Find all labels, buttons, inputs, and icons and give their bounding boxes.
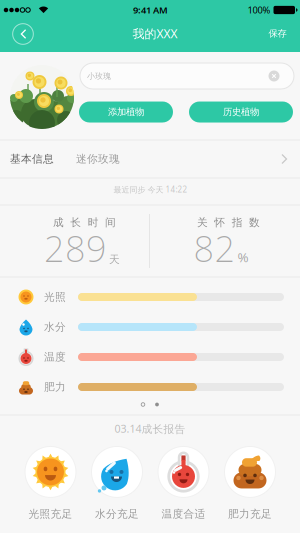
staticText: 水分 (44, 320, 66, 333)
staticText: 我的XXX (132, 25, 177, 41)
staticText: 82 (193, 224, 235, 272)
button[interactable]: 光照充足 (17, 442, 83, 524)
staticText: 最近同步 今天 14:22 (113, 184, 187, 195)
staticText: 关怀指数 (197, 216, 260, 229)
staticText: 迷你玫瑰 (76, 152, 120, 165)
button[interactable]: 添加植物 (79, 101, 173, 122)
staticText: 03.14成长报告 (114, 422, 185, 436)
staticText: 肥力充足 (228, 507, 272, 520)
staticText: 光照 (44, 290, 66, 303)
button[interactable]: 肥力充足 (217, 442, 283, 524)
staticText: 9:41 AM (133, 4, 168, 16)
button[interactable]: 温度合适 (150, 442, 216, 524)
staticText: 小玫瑰 (87, 71, 111, 81)
staticText: 100% (247, 4, 270, 16)
button[interactable]: 历史植物 (189, 101, 293, 122)
staticText: 基本信息 (10, 152, 54, 165)
staticText: 光照充足 (28, 507, 72, 520)
staticText: 添加植物 (108, 106, 144, 118)
staticText: 温度 (44, 350, 66, 363)
staticText: 历史植物 (223, 106, 259, 118)
button[interactable]: 保存 (268, 28, 286, 39)
button[interactable] (12, 23, 33, 44)
staticText: 成长时间 (53, 216, 116, 229)
staticText: % (237, 248, 248, 266)
staticText: 289 (44, 224, 107, 272)
button[interactable]: 小玫瑰 (80, 63, 294, 89)
staticText: 天 (109, 253, 120, 266)
staticText: 保存 (268, 28, 286, 39)
staticText: 温度合适 (161, 507, 205, 520)
button[interactable]: 基本信息 (0, 140, 300, 178)
button[interactable]: 水分充足 (84, 442, 150, 524)
staticText: 肥力 (44, 380, 66, 393)
staticText: 水分充足 (95, 507, 139, 520)
